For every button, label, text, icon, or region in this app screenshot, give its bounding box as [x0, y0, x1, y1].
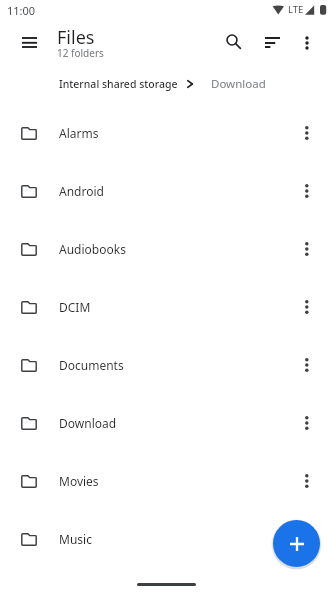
- button[interactable]: Music: [0, 510, 333, 568]
- staticText: Alarms: [59, 125, 289, 141]
- button[interactable]: Documents: [0, 336, 333, 394]
- button[interactable]: Menu: [13, 26, 45, 58]
- staticText: Files: [57, 25, 95, 50]
- staticText: Movies: [59, 473, 289, 489]
- staticText: Download: [59, 415, 289, 431]
- button[interactable]: More options for Audiobooks: [289, 231, 325, 267]
- button[interactable]: Search: [217, 25, 249, 57]
- button[interactable]: DCIM: [0, 278, 333, 336]
- button[interactable]: Movies: [0, 452, 333, 510]
- button[interactable]: More options for Movies: [289, 463, 325, 499]
- button[interactable]: Create new: [273, 520, 320, 567]
- button[interactable]: Alarms: [0, 104, 333, 162]
- button[interactable]: More options for Music: [289, 521, 325, 557]
- staticText: Music: [59, 531, 289, 547]
- button[interactable]: Download: [211, 76, 266, 92]
- button[interactable]: Internal shared storage: [59, 77, 178, 91]
- button[interactable]: More options for DCIM: [289, 289, 325, 325]
- button[interactable]: Download: [0, 394, 333, 452]
- button[interactable]: Audiobooks: [0, 220, 333, 278]
- staticText: LTE: [288, 3, 304, 16]
- staticText: Audiobooks: [59, 241, 289, 257]
- button[interactable]: More options for Alarms: [289, 115, 325, 151]
- staticText: DCIM: [59, 299, 289, 315]
- button[interactable]: More options for Download: [289, 405, 325, 441]
- staticText: Documents: [59, 357, 289, 373]
- staticText: 11:00: [7, 3, 36, 18]
- staticText: 12 folders: [57, 46, 104, 60]
- staticText: Android: [59, 183, 289, 199]
- button[interactable]: More options for Android: [289, 173, 325, 209]
- button[interactable]: Android: [0, 162, 333, 220]
- button[interactable]: More options for Documents: [289, 347, 325, 383]
- button[interactable]: More options: [291, 27, 323, 59]
- button[interactable]: Sort: [256, 26, 288, 58]
